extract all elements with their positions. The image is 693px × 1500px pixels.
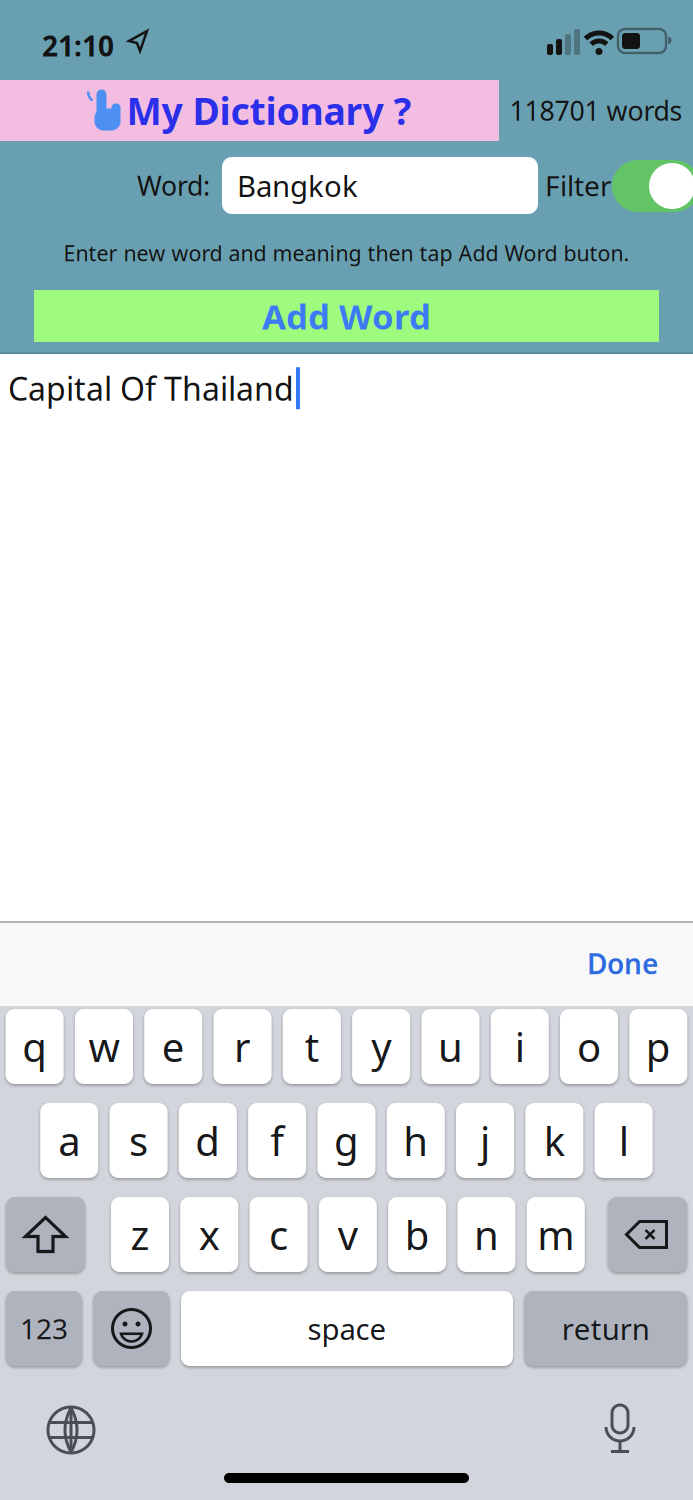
button[interactable]: p xyxy=(629,1009,687,1084)
button[interactable]: h xyxy=(387,1103,445,1178)
button[interactable]: q xyxy=(6,1009,64,1084)
button[interactable]: z xyxy=(111,1197,169,1272)
button[interactable]: l xyxy=(595,1103,653,1178)
button[interactable]: e xyxy=(144,1009,202,1084)
staticText: Bangkok xyxy=(237,166,358,205)
button[interactable]: Next keyboard xyxy=(48,1407,96,1455)
staticText: My Dictionary ? xyxy=(126,86,411,135)
button[interactable]: t xyxy=(283,1009,341,1084)
button[interactable]: k xyxy=(525,1103,583,1178)
staticText: v xyxy=(338,1208,358,1261)
button[interactable]: o xyxy=(560,1009,618,1084)
staticText: h xyxy=(403,1114,428,1167)
button[interactable]: Filter toggle xyxy=(612,160,693,212)
staticText: d xyxy=(195,1114,220,1167)
staticText: k xyxy=(544,1114,565,1167)
staticText: s xyxy=(129,1114,148,1167)
staticText: Capital Of Thailand xyxy=(8,367,294,409)
button[interactable]: x xyxy=(180,1197,238,1272)
button[interactable]: j xyxy=(456,1103,514,1178)
button[interactable]: a xyxy=(40,1103,98,1178)
button[interactable]: y xyxy=(352,1009,410,1084)
button[interactable]: i xyxy=(491,1009,549,1084)
staticText: l xyxy=(619,1114,629,1167)
staticText: a xyxy=(58,1114,80,1167)
button[interactable]: v xyxy=(319,1197,377,1272)
staticText: space xyxy=(307,1309,386,1348)
staticText: return xyxy=(562,1309,650,1348)
button[interactable]: Word text field xyxy=(222,157,538,214)
staticText: c xyxy=(269,1208,288,1261)
button[interactable]: return xyxy=(524,1291,687,1366)
staticText: 123 xyxy=(20,1310,68,1347)
button[interactable]: d xyxy=(179,1103,237,1178)
staticText: t xyxy=(305,1020,319,1073)
button[interactable]: f xyxy=(248,1103,306,1178)
staticText: y xyxy=(371,1020,391,1073)
button[interactable]: Dictation xyxy=(605,1405,635,1453)
staticText: Enter new word and meaning then tap Add … xyxy=(63,239,629,267)
staticText: b xyxy=(405,1208,430,1261)
staticText: x xyxy=(199,1208,220,1261)
button[interactable]: b xyxy=(388,1197,446,1272)
staticText: 118701 words xyxy=(509,93,682,128)
staticText: f xyxy=(270,1114,284,1167)
staticText: e xyxy=(162,1020,185,1073)
button[interactable]: 123 xyxy=(6,1291,82,1366)
button[interactable]: Add Word xyxy=(34,290,659,342)
button[interactable]: Emoji xyxy=(93,1291,169,1366)
button[interactable]: u xyxy=(421,1009,479,1084)
button[interactable]: g xyxy=(317,1103,375,1178)
staticText: p xyxy=(646,1020,671,1073)
button[interactable]: w xyxy=(75,1009,133,1084)
staticText: Done xyxy=(587,945,658,982)
staticText: j xyxy=(480,1114,490,1167)
button[interactable]: Delete xyxy=(608,1197,687,1272)
staticText: Word: xyxy=(137,168,210,203)
staticText: Filter xyxy=(545,167,612,204)
button[interactable]: Shift xyxy=(6,1197,85,1272)
staticText: 21:10 xyxy=(42,27,114,64)
button[interactable]: n xyxy=(457,1197,515,1272)
staticText: z xyxy=(130,1208,149,1261)
button[interactable]: space xyxy=(181,1291,513,1366)
staticText: Add Word xyxy=(262,293,431,339)
staticText: u xyxy=(438,1020,463,1073)
staticText: w xyxy=(88,1020,119,1073)
button[interactable]: My Dictionary ? xyxy=(0,80,499,141)
button[interactable]: r xyxy=(213,1009,272,1084)
button[interactable]: Done xyxy=(538,921,658,1006)
staticText: i xyxy=(515,1020,525,1073)
staticText: g xyxy=(334,1114,359,1167)
staticText: n xyxy=(474,1208,499,1261)
button[interactable]: s xyxy=(109,1103,168,1178)
button[interactable]: m xyxy=(527,1197,585,1272)
button[interactable]: c xyxy=(249,1197,308,1272)
staticText: m xyxy=(537,1208,574,1261)
staticText: o xyxy=(577,1020,601,1073)
staticText: q xyxy=(22,1020,47,1073)
staticText: r xyxy=(234,1020,251,1073)
